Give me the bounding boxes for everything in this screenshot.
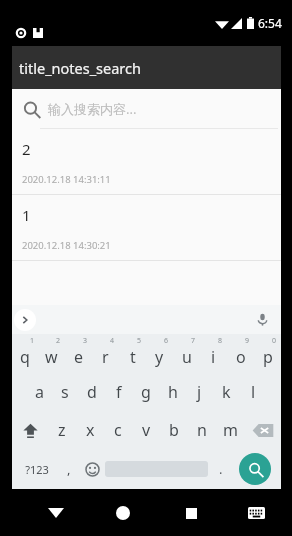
- button[interactable]: Recents: [171, 493, 211, 533]
- button[interactable]: j: [186, 373, 213, 411]
- button[interactable]: c: [104, 411, 132, 449]
- button[interactable]: ?123: [16, 449, 58, 489]
- staticText: v: [142, 419, 151, 441]
- button[interactable]: l: [240, 373, 267, 411]
- staticText: s: [61, 381, 69, 403]
- button[interactable]: 2: [38, 334, 65, 373]
- staticText: 2: [56, 336, 61, 346]
- staticText: 6: [164, 336, 169, 346]
- staticText: 6:54: [258, 15, 282, 31]
- staticText: l: [251, 381, 256, 403]
- button[interactable]: .: [208, 449, 233, 489]
- button[interactable]: a: [26, 373, 52, 411]
- staticText: y: [155, 346, 164, 368]
- staticText: a: [35, 381, 44, 403]
- button[interactable]: ,: [58, 449, 80, 489]
- staticText: j: [197, 381, 202, 403]
- button[interactable]: z: [48, 411, 76, 449]
- staticText: 3: [83, 336, 88, 346]
- staticText: i: [211, 346, 216, 368]
- button[interactable]: k: [213, 373, 240, 411]
- button[interactable]: Emoji: [80, 449, 105, 489]
- staticText: x: [86, 419, 95, 441]
- staticText: 输入搜索内容...: [48, 100, 137, 118]
- button[interactable]: More suggestions: [14, 309, 36, 331]
- staticText: f: [116, 381, 122, 403]
- button[interactable]: Search: [12, 89, 281, 129]
- button[interactable]: d: [78, 373, 105, 411]
- button[interactable]: title_notes_search: [12, 46, 281, 89]
- staticText: 0: [272, 336, 277, 346]
- button[interactable]: g: [132, 373, 159, 411]
- staticText: 2020.12.18 14:31:11: [22, 173, 111, 186]
- staticText: 7: [191, 336, 196, 346]
- staticText: u: [182, 346, 192, 368]
- button[interactable]: 6: [146, 334, 173, 373]
- button[interactable]: s: [52, 373, 78, 411]
- other: Voice input: [256, 313, 269, 326]
- staticText: r: [102, 346, 109, 368]
- button[interactable]: n: [188, 411, 216, 449]
- button[interactable]: 9: [227, 334, 254, 373]
- staticText: 1: [22, 205, 31, 225]
- button[interactable]: Switch keyboard: [238, 495, 274, 531]
- staticText: h: [168, 381, 178, 403]
- staticText: title_notes_search: [19, 58, 141, 78]
- staticText: 5: [137, 336, 142, 346]
- staticText: q: [20, 346, 30, 368]
- button[interactable]: Back: [36, 493, 76, 533]
- staticText: d: [87, 381, 97, 403]
- staticText: o: [236, 346, 246, 368]
- button[interactable]: f: [105, 373, 132, 411]
- button[interactable]: Home: [103, 493, 143, 533]
- staticText: k: [222, 381, 231, 403]
- button[interactable]: v: [132, 411, 160, 449]
- button[interactable]: Backspace: [244, 411, 281, 449]
- staticText: e: [74, 346, 84, 368]
- button[interactable]: Search: [239, 453, 271, 485]
- staticText: c: [114, 419, 122, 441]
- staticText: w: [45, 346, 58, 368]
- staticText: .: [219, 460, 223, 478]
- staticText: p: [263, 346, 273, 368]
- staticText: b: [169, 419, 179, 441]
- button[interactable]: 3: [65, 334, 92, 373]
- button[interactable]: 2: [12, 129, 281, 195]
- button[interactable]: 0: [254, 334, 281, 373]
- staticText: ,: [67, 460, 71, 478]
- button[interactable]: b: [160, 411, 188, 449]
- staticText: g: [141, 381, 151, 403]
- staticText: n: [197, 419, 207, 441]
- button[interactable]: Shift: [12, 411, 48, 449]
- button[interactable]: 7: [173, 334, 200, 373]
- staticText: 2: [22, 139, 31, 159]
- button[interactable]: h: [159, 373, 186, 411]
- staticText: 1: [30, 336, 35, 346]
- button[interactable]: 1: [12, 195, 281, 261]
- staticText: 2020.12.18 14:30:21: [22, 239, 111, 252]
- button[interactable]: 8: [200, 334, 227, 373]
- button[interactable]: 5: [119, 334, 146, 373]
- button[interactable]: 1: [12, 334, 38, 373]
- button[interactable]: m: [216, 411, 244, 449]
- staticText: 4: [110, 336, 115, 346]
- staticText: t: [130, 346, 136, 368]
- staticText: m: [223, 419, 238, 441]
- other: Search: [23, 101, 40, 118]
- staticText: 9: [245, 336, 250, 346]
- button[interactable]: x: [76, 411, 104, 449]
- staticText: 8: [218, 336, 223, 346]
- staticText: z: [58, 419, 66, 441]
- button[interactable]: 4: [92, 334, 119, 373]
- staticText: ?123: [25, 462, 49, 477]
